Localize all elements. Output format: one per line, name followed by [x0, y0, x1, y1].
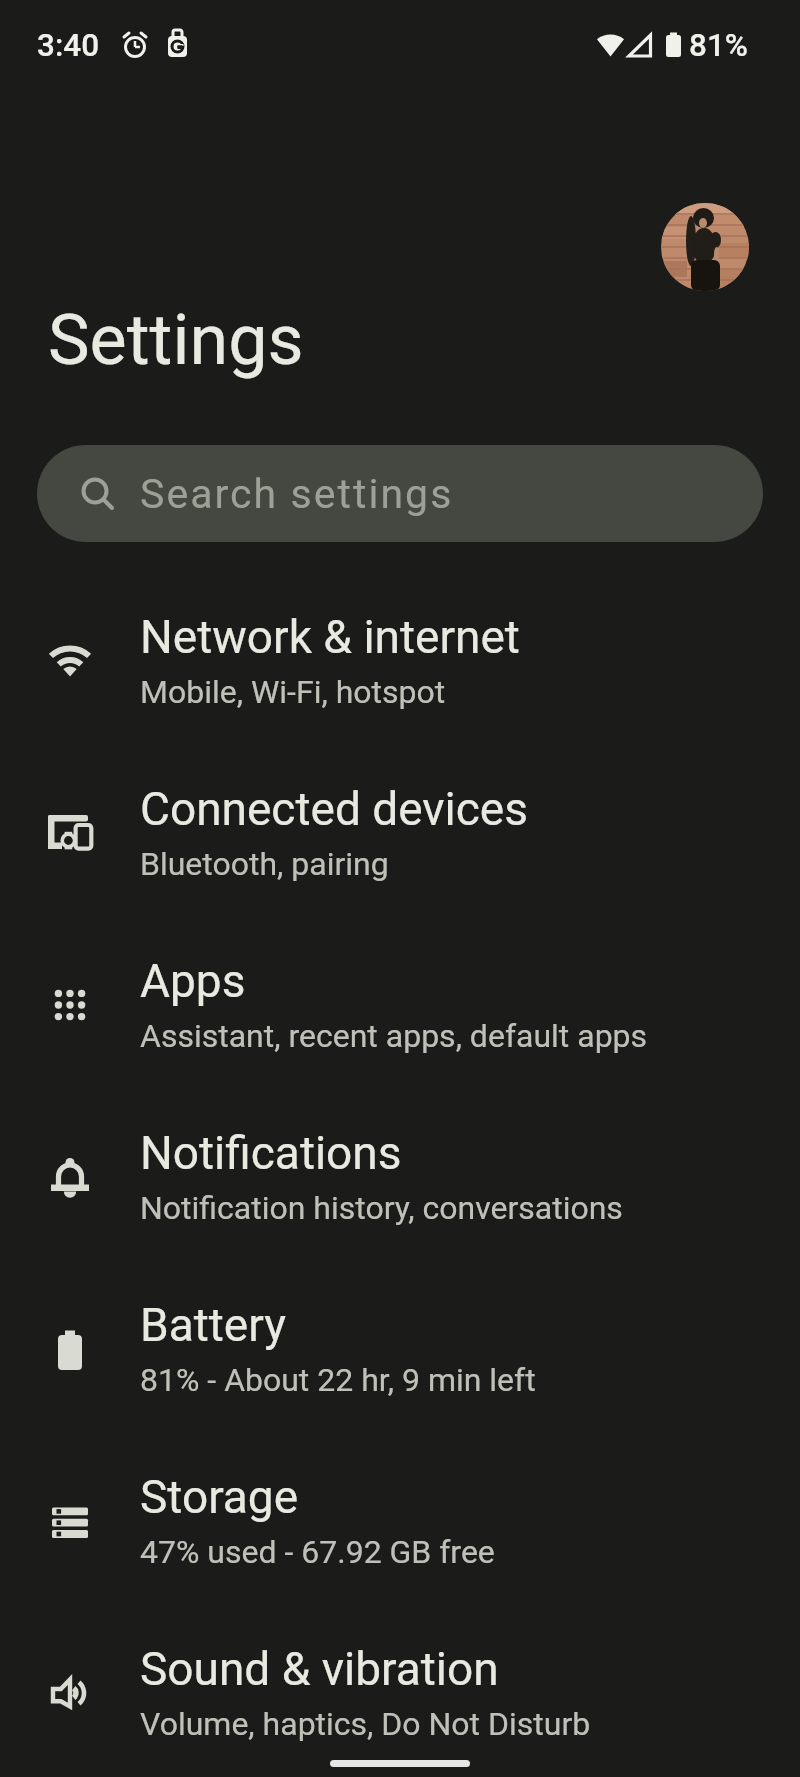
staticText: Mobile, Wi-Fi, hotspot — [140, 673, 446, 711]
staticText: Settings — [48, 299, 304, 381]
button[interactable]: Sound & vibration — [0, 1617, 800, 1777]
staticText: Volume, haptics, Do Not Disturb — [140, 1705, 591, 1743]
staticText: 81% — [689, 27, 748, 64]
button[interactable]: Battery — [0, 1273, 800, 1445]
button[interactable]: Network & internet — [0, 585, 800, 757]
staticText: Search settings — [140, 470, 454, 518]
staticText: Storage — [140, 1470, 299, 1524]
button[interactable]: Connected devices — [0, 757, 800, 929]
staticText: Network & internet — [140, 610, 520, 664]
staticText: Bluetooth, pairing — [140, 845, 389, 883]
button[interactable] — [661, 203, 749, 291]
staticText: Notification history, conversations — [140, 1189, 623, 1227]
staticText: Sound & vibration — [140, 1642, 499, 1696]
button[interactable]: Search settings — [37, 445, 763, 542]
button[interactable]: Apps — [0, 929, 800, 1101]
staticText: Connected devices — [140, 782, 528, 836]
button[interactable]: Notifications — [0, 1101, 800, 1273]
staticText: Apps — [140, 954, 246, 1008]
button[interactable]: Storage — [0, 1445, 800, 1617]
staticText: 47% used - 67.92 GB free — [140, 1533, 495, 1571]
staticText: Battery — [140, 1298, 286, 1352]
staticText: Notifications — [140, 1126, 402, 1180]
staticText: Assistant, recent apps, default apps — [140, 1017, 648, 1055]
staticText: 3:40 — [37, 27, 100, 64]
staticText: 81% - About 22 hr, 9 min left — [140, 1361, 536, 1399]
